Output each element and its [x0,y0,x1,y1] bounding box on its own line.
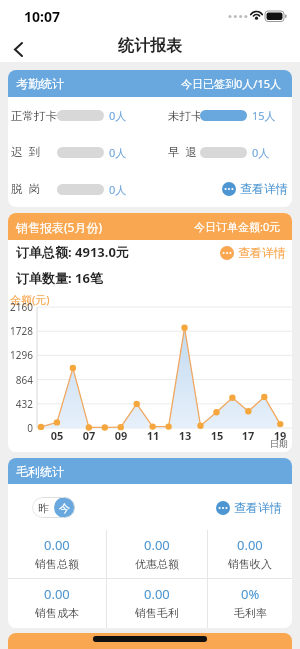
button[interactable]: 查看详情 [220,245,286,260]
staticText: 早 退 [168,144,200,160]
staticText: 查看详情 [240,181,288,196]
staticText: 1296 [8,348,33,362]
staticText: 0人 [109,182,127,197]
staticText: 05 [45,428,69,443]
staticText: 432 [8,397,33,411]
staticText: 今日已签到0人/15人 [181,76,281,91]
staticText: 0.00 [44,536,70,554]
staticText: 毛利率 [234,606,267,620]
staticText: 17 [236,428,260,443]
staticText: 今 [59,501,70,515]
staticText: 销售报表(5月份) [16,219,103,235]
staticText: 昨 [38,501,49,515]
staticText: 0.00 [144,585,170,603]
staticText: 正常打卡 [11,109,57,123]
staticText: 考勤统计 [16,76,64,91]
staticText: 销售总额 [35,557,79,571]
staticText: 迟 到 [11,144,57,160]
staticText: 15 [205,428,229,443]
button[interactable]: 查看详情 [216,500,282,515]
staticText: 10:07 [24,7,60,26]
staticText: 09 [109,428,133,443]
staticText: 0% [241,585,260,603]
button[interactable]: 查看详情 [222,181,288,196]
staticText: 查看详情 [238,245,286,260]
staticText: 今日订单金额:0元 [194,219,281,234]
staticText: 未打卡 [168,109,200,123]
staticText: 销售收入 [228,557,272,571]
staticText: 07 [77,428,101,443]
staticText: 销售成本 [35,606,79,620]
staticText: 19 [268,428,292,443]
staticText: 15人 [252,108,276,123]
staticText: 查看详情 [234,500,282,515]
button[interactable] [0,39,28,59]
staticText: 金额(元) [10,292,50,307]
staticText: 0.00 [44,585,70,603]
staticText: 0人 [109,145,127,160]
staticText: 脱 岗 [11,181,57,197]
staticText: 0人 [109,108,127,123]
staticText: 毛利统计 [16,464,64,479]
staticText: 864 [8,373,33,387]
staticText: 11 [141,428,165,443]
staticText: 统计报表 [118,36,182,56]
staticText: 0.00 [237,536,263,554]
staticText: 0.00 [144,536,170,554]
staticText: 0 [8,421,33,435]
staticText: 订单总额: 4913.0元 [16,243,129,261]
button[interactable]: 昨 [32,497,54,518]
staticText: 日期 [270,438,288,449]
staticText: 销售毛利 [135,606,179,620]
staticText: 13 [173,428,197,443]
button[interactable]: 今 [54,497,75,518]
staticText: 1728 [8,324,33,338]
staticText: 0人 [252,145,270,160]
staticText: 2160 [8,300,33,314]
staticText: 优惠总额 [135,557,179,571]
staticText: 订单数量: 16笔 [16,269,103,287]
